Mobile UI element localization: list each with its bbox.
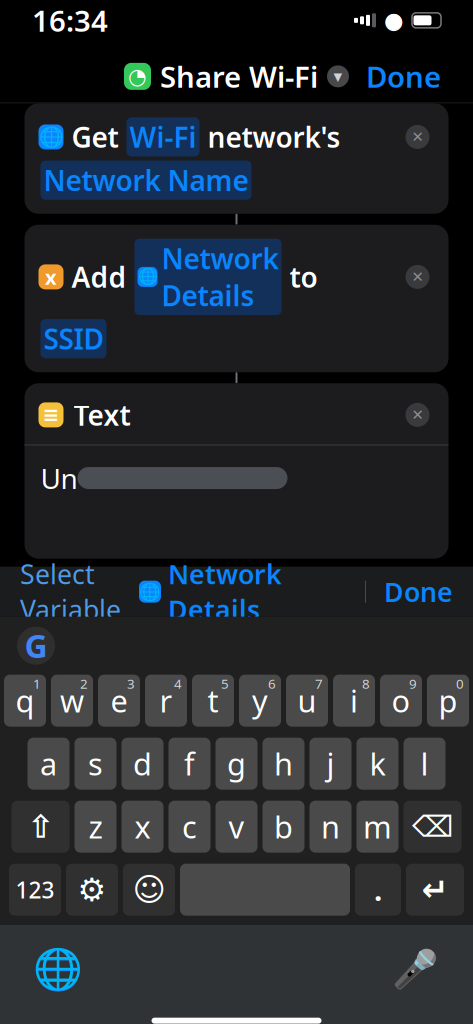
staticText: y [252,680,268,721]
button[interactable]: Backspace [403,801,461,853]
staticText: g [227,743,246,784]
button[interactable]: Shortcut options [327,65,349,87]
button[interactable]: f [168,738,210,790]
button[interactable]: d [121,738,163,790]
staticText: 🌐 [139,582,161,601]
staticText: Get [71,118,118,156]
button[interactable]: Numbers and symbols [9,864,61,916]
staticText: ✕ [411,406,423,423]
staticText: 1 [33,675,41,692]
staticText: network's [207,118,340,156]
button[interactable]: e [98,675,140,727]
staticText: Done [366,57,441,96]
staticText: w [60,680,84,721]
staticText: v [228,806,244,847]
button[interactable]: Switch keyboard [32,943,84,995]
staticText: ☺ [132,871,165,908]
button[interactable]: u [286,675,328,727]
staticText: x [45,264,57,290]
staticText: ▾ [333,66,342,86]
staticText: e [110,680,127,721]
button[interactable]: Select Variable [20,548,121,635]
button[interactable]: 🌐 [24,103,448,214]
button[interactable]: i [333,675,375,727]
staticText: r [159,680,172,721]
button[interactable]: q [4,675,46,727]
staticText: 8 [362,675,370,692]
staticText: ✕ [411,129,423,145]
button[interactable]: b [262,801,304,853]
button[interactable]: Shift [11,801,69,853]
staticText: Network Details [168,556,282,627]
staticText: 123 [15,875,54,905]
staticText: a [40,743,57,784]
button[interactable]: k [356,738,398,790]
staticText: Un [40,459,77,497]
button[interactable]: g [215,738,257,790]
staticText: t [207,680,218,721]
button[interactable]: v [215,801,257,853]
staticText: 7 [315,675,323,692]
staticText: ↵ [421,871,448,908]
button[interactable]: Keyboard settings [66,864,118,916]
button[interactable]: Done [384,566,453,617]
button[interactable]: n [309,801,351,853]
staticText: ◴ [384,7,404,33]
staticText: o [391,680,410,721]
button[interactable]: Done [356,51,451,102]
button[interactable]: y [239,675,281,727]
staticText: ● [384,8,403,32]
staticText: i [350,680,358,721]
button[interactable]: a [27,738,69,790]
button[interactable]: j [309,738,351,790]
staticText: 🌐 [33,946,83,992]
staticText: ✕ [411,269,423,285]
staticText: 🌐 [38,125,63,148]
button[interactable]: s [74,738,116,790]
staticText: 6 [268,675,276,692]
button[interactable]: r [145,675,187,727]
staticText: Share Wi-Fi [160,57,318,96]
staticText: G [24,624,47,667]
staticText: z [88,806,102,847]
button[interactable]: x [24,225,448,372]
button[interactable]: Voice input [389,943,441,995]
button[interactable]: Remove action [400,398,434,432]
button[interactable]: ≡ [24,383,448,559]
button[interactable]: w [51,675,93,727]
staticText: ⚙ [77,871,106,908]
button[interactable]: l [403,738,445,790]
staticText: l [420,743,428,784]
button[interactable]: x [121,801,163,853]
staticText: Select Variable [20,556,121,627]
button[interactable]: Return [406,864,464,916]
button[interactable]: t [192,675,234,727]
staticText: u [297,680,316,721]
button[interactable]: Period [355,864,401,916]
button[interactable]: Google search [12,622,60,670]
staticText: q [15,680,34,721]
staticText: c [182,806,197,847]
staticText: s [88,743,103,784]
button[interactable]: h [262,738,304,790]
button[interactable]: m [356,801,398,853]
button[interactable]: z [74,801,116,853]
staticText: j [326,743,334,784]
button[interactable]: c [168,801,210,853]
button[interactable]: Remove action [400,260,434,294]
staticText: Wi-Fi [129,118,196,156]
staticText: 4 [174,675,182,692]
staticText: 0 [456,675,464,692]
staticText: Add [71,258,126,295]
button[interactable]: Remove action [400,120,434,154]
staticText: Text [73,396,130,433]
staticText: h [274,743,293,784]
button[interactable]: 🌐 [139,550,282,633]
staticText: 9 [409,675,417,692]
staticText: Done [384,574,453,609]
button[interactable]: p [427,675,469,727]
button[interactable]: Emoji [123,864,175,916]
button[interactable]: o [380,675,422,727]
staticText: k [369,743,385,784]
